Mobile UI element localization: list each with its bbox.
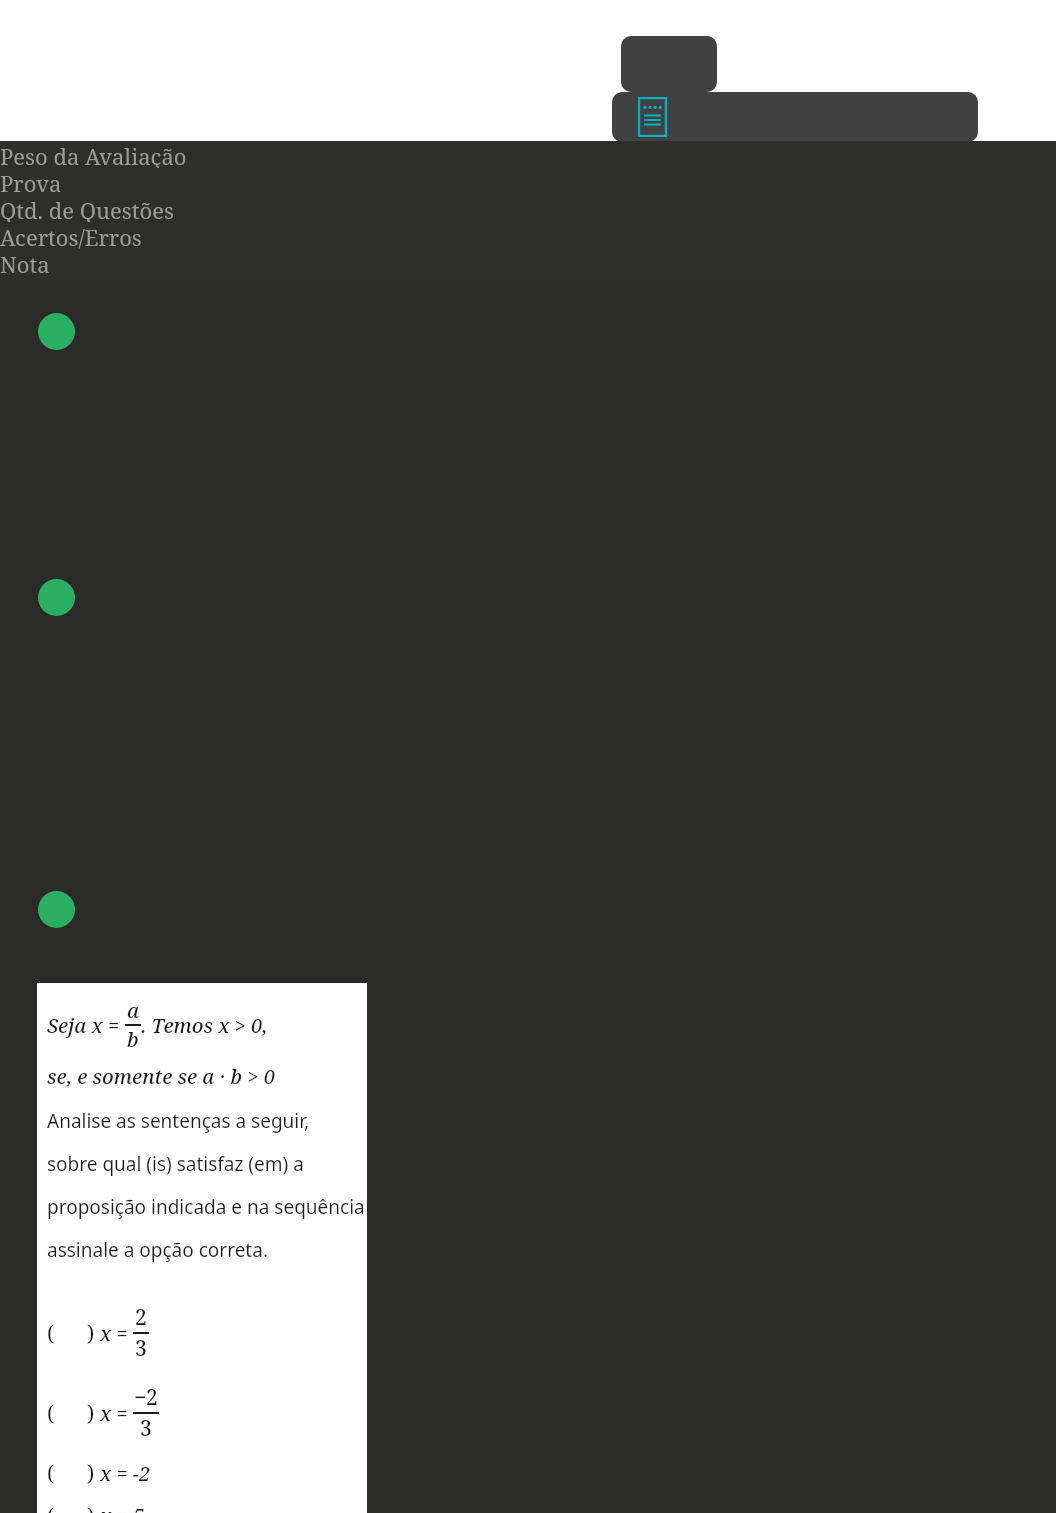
staticText: se, e somente se a · b > 0	[47, 1063, 275, 1090]
staticText: Qtd. de Questões	[0, 195, 1056, 222]
staticText: proposição indicada e na sequência	[47, 1194, 365, 1220]
staticText: 3	[140, 1414, 152, 1443]
button[interactable]: Status	[0, 280, 1053, 855]
staticText: b	[127, 1026, 139, 1053]
staticText: x =	[100, 1320, 133, 1347]
staticText: ( )	[47, 1399, 100, 1428]
staticText: x = 5	[100, 1502, 144, 1513]
staticText: 3	[135, 1334, 147, 1363]
staticText: Acertos/Erros	[0, 222, 1056, 249]
staticText: x = −2	[100, 1460, 151, 1487]
staticText: Peso da Avaliação	[0, 141, 1056, 168]
staticText: sobre qual (is) satisfaz (em) a	[47, 1151, 304, 1177]
staticText: x =	[100, 1400, 133, 1427]
staticText: . Temos x > 0,	[141, 1012, 268, 1039]
button[interactable]: Questionário	[638, 97, 667, 137]
button[interactable]: Status	[38, 579, 75, 616]
staticText: Nota	[0, 249, 1056, 276]
staticText: assinale a opção correta.	[47, 1237, 268, 1263]
button[interactable]: Status	[38, 891, 75, 928]
staticText: ( )	[47, 1459, 100, 1488]
staticText: Seja x =	[47, 1012, 125, 1039]
staticText: a	[127, 997, 140, 1024]
staticText: 2	[135, 1303, 147, 1332]
button[interactable]: Status	[38, 313, 75, 350]
staticText: −2	[134, 1383, 158, 1412]
button[interactable]: Aba	[621, 36, 717, 92]
staticText: Analise as sentenças a seguir,	[47, 1108, 310, 1134]
staticText: ( )	[47, 1502, 100, 1513]
staticText: ( )	[47, 1319, 100, 1348]
button[interactable]: Status	[0, 858, 1053, 1513]
staticText: Prova	[0, 168, 1056, 195]
